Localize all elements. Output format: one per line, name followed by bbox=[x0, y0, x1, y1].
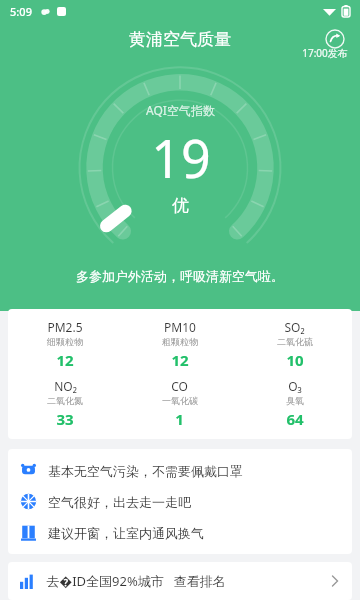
staticText: PM2.5 bbox=[47, 319, 83, 335]
staticText: AQI空气指数 bbox=[146, 102, 215, 118]
staticText: CO bbox=[171, 378, 188, 394]
staticText: PM10 bbox=[164, 319, 196, 335]
staticText: 12 bbox=[56, 350, 74, 370]
staticText: 去�ID全国92%城市 查看排名 bbox=[46, 572, 226, 590]
staticText: 17:00发布 bbox=[302, 46, 348, 60]
button[interactable]: 基本无空气污染，不需要佩戴口罩 bbox=[8, 455, 352, 486]
staticText: 12 bbox=[171, 350, 189, 370]
staticText: O₃ bbox=[288, 378, 302, 394]
staticText: 二氧化氮 bbox=[47, 395, 83, 406]
button[interactable]: NO₂ bbox=[8, 378, 122, 429]
button[interactable]: CO bbox=[122, 378, 237, 429]
staticText: 粗颗粒物 bbox=[162, 336, 198, 347]
staticText: 黄浦空气质量 bbox=[129, 29, 231, 50]
staticText: 一氧化碳 bbox=[162, 395, 198, 406]
staticText: 19 bbox=[151, 122, 211, 193]
staticText: 33 bbox=[56, 409, 74, 429]
button[interactable]: 建议开窗，让室内通风换气 bbox=[8, 517, 352, 548]
staticText: 1 bbox=[175, 409, 184, 429]
button[interactable]: 去�ID全国92%城市 查看排名 bbox=[8, 562, 352, 600]
staticText: NO₂ bbox=[54, 378, 77, 394]
button[interactable]: Share bbox=[322, 26, 348, 52]
staticText: 臭氧 bbox=[286, 395, 304, 406]
staticText: 二氧化硫 bbox=[277, 336, 313, 347]
button[interactable]: PM10 bbox=[122, 319, 237, 370]
button[interactable]: SO₂ bbox=[237, 319, 352, 370]
staticText: 空气很好，出去走一走吧 bbox=[48, 494, 191, 510]
staticText: 5:09 bbox=[10, 4, 32, 19]
staticText: 基本无空气污染，不需要佩戴口罩 bbox=[48, 463, 243, 479]
staticText: 10 bbox=[286, 350, 304, 370]
staticText: 细颗粒物 bbox=[47, 336, 83, 347]
staticText: 64 bbox=[286, 409, 304, 429]
button[interactable]: 空气很好，出去走一走吧 bbox=[8, 486, 352, 517]
staticText: 优 bbox=[172, 195, 189, 216]
button[interactable]: PM2.5 bbox=[8, 319, 122, 370]
staticText: 多参加户外活动，呼吸清新空气啦。 bbox=[76, 268, 284, 284]
button[interactable]: O₃ bbox=[237, 378, 352, 429]
staticText: 建议开窗，让室内通风换气 bbox=[48, 525, 204, 541]
staticText: SO₂ bbox=[284, 319, 305, 335]
